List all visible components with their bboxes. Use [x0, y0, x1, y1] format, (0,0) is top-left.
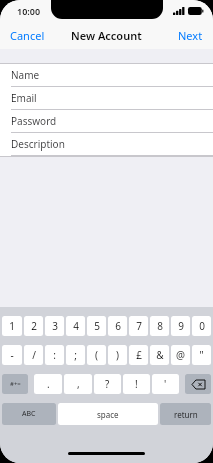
staticText: 0	[199, 319, 205, 333]
button[interactable]: #+=	[2, 374, 28, 394]
button[interactable]: .	[34, 374, 62, 394]
staticText: 1	[9, 319, 15, 333]
staticText: 3	[52, 319, 58, 333]
button[interactable]: ABC	[2, 403, 56, 425]
staticText: ,	[77, 377, 80, 391]
staticText: 4	[73, 319, 79, 333]
staticText: 7	[136, 319, 142, 333]
staticText: 2	[31, 319, 37, 333]
button[interactable]: -	[2, 345, 22, 365]
staticText: )	[116, 348, 119, 362]
button[interactable]: @	[171, 345, 190, 365]
button[interactable]: Email	[0, 87, 213, 110]
staticText: Name	[11, 68, 40, 82]
button[interactable]: 7	[129, 316, 148, 336]
button[interactable]: Cancel	[0, 22, 55, 49]
button[interactable]: 2	[24, 316, 43, 336]
staticText: space	[97, 409, 119, 420]
button[interactable]: '	[152, 374, 179, 394]
staticText: 5	[94, 319, 100, 333]
button[interactable]: Name	[0, 64, 213, 87]
staticText: /	[32, 348, 36, 362]
button[interactable]: 0	[192, 316, 211, 336]
button[interactable]: 8	[150, 316, 169, 336]
button[interactable]: 9	[171, 316, 190, 336]
button[interactable]: ;	[66, 345, 85, 365]
button[interactable]: Password	[0, 110, 213, 133]
staticText: .	[47, 377, 50, 391]
staticText: 6	[115, 319, 121, 333]
staticText: Email	[11, 91, 37, 105]
staticText: Cancel	[10, 28, 45, 43]
button[interactable]: (	[87, 345, 106, 365]
button[interactable]: &	[150, 345, 169, 365]
button[interactable]: ,	[64, 374, 92, 394]
staticText: Password	[11, 114, 57, 128]
staticText: -	[10, 348, 14, 362]
button[interactable]: /	[24, 345, 43, 365]
button[interactable]: Next	[168, 22, 213, 49]
button[interactable]: return	[160, 403, 211, 425]
staticText: 10:00	[17, 5, 41, 17]
staticText: ABC	[22, 409, 36, 419]
staticText: '	[164, 377, 167, 391]
staticText: @	[176, 348, 185, 362]
staticText: 8	[157, 319, 163, 333]
button[interactable]: "	[192, 345, 211, 365]
button[interactable]: 3	[45, 316, 64, 336]
staticText: "	[199, 348, 204, 362]
button[interactable]: 5	[87, 316, 106, 336]
button[interactable]: Backspace	[185, 374, 211, 394]
button[interactable]: !	[123, 374, 150, 394]
staticText: &	[156, 348, 164, 362]
button[interactable]: space	[58, 403, 158, 425]
button[interactable]: 1	[2, 316, 22, 336]
staticText: Next	[178, 28, 203, 43]
button[interactable]: 4	[66, 316, 85, 336]
staticText: ?	[105, 377, 110, 391]
staticText: (	[95, 348, 98, 362]
staticText: Description	[11, 137, 65, 151]
button[interactable]: :	[45, 345, 64, 365]
staticText: :	[53, 348, 56, 362]
button[interactable]: 6	[108, 316, 127, 336]
button[interactable]: Description	[0, 133, 213, 156]
staticText: #+=	[10, 380, 21, 388]
button[interactable]: £	[129, 345, 148, 365]
staticText: return	[174, 409, 198, 420]
staticText: £	[136, 348, 142, 362]
staticText: !	[135, 377, 138, 391]
staticText: ;	[74, 348, 77, 362]
staticText: 9	[178, 319, 184, 333]
staticText: New Account	[71, 28, 142, 43]
button[interactable]: )	[108, 345, 127, 365]
button[interactable]: ?	[94, 374, 121, 394]
